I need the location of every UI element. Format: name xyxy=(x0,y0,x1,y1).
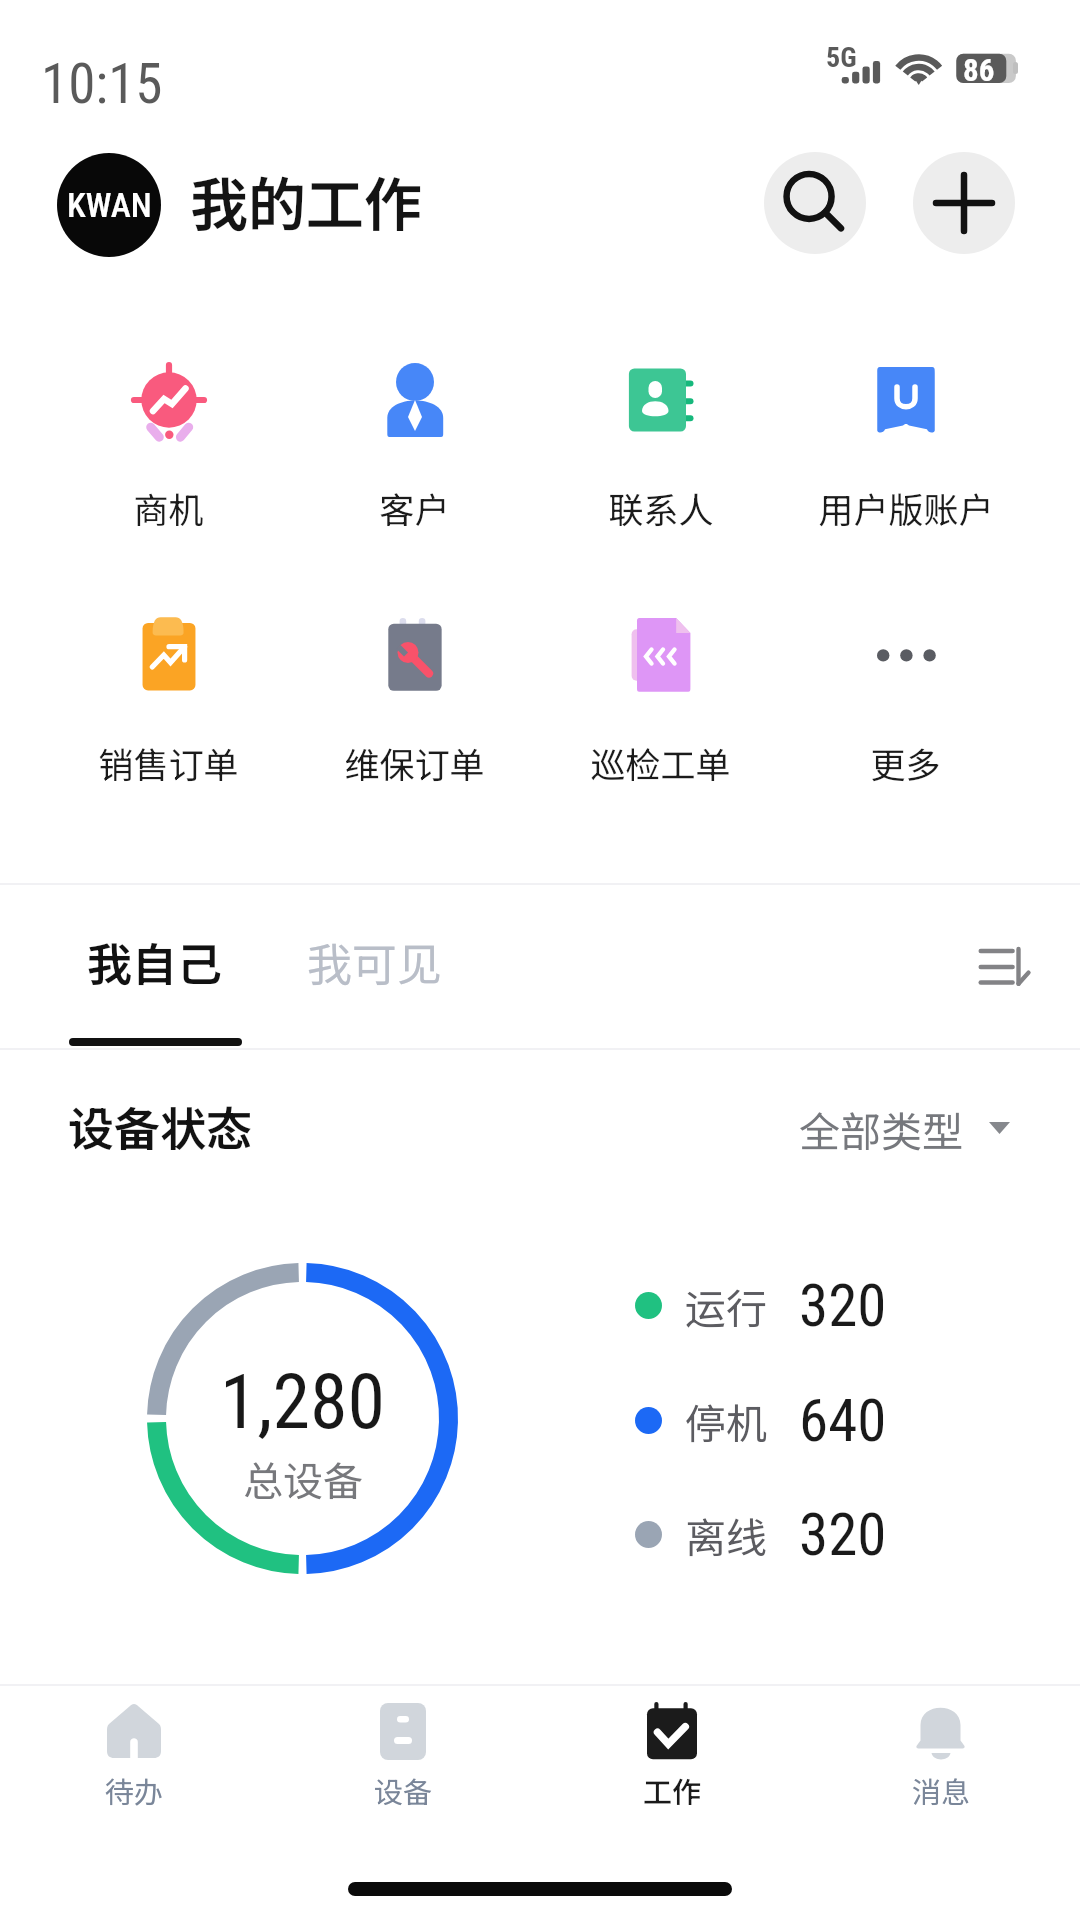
button[interactable]: Logo xyxy=(57,153,161,257)
button[interactable]: 我自己 xyxy=(69,907,241,1016)
staticText: 更多 xyxy=(870,737,941,788)
button[interactable]: Add xyxy=(913,152,1015,254)
staticText: 商机 xyxy=(133,482,204,533)
staticText: 10:15 xyxy=(41,52,163,116)
button[interactable]: 商机 xyxy=(47,336,290,526)
staticText: 86 xyxy=(963,52,995,88)
staticText: 640 xyxy=(799,1386,887,1455)
button[interactable]: 待办 xyxy=(0,1686,268,1816)
staticText: 1,280 xyxy=(220,1357,386,1446)
staticText: 维保订单 xyxy=(344,737,485,788)
staticText: 总设备 xyxy=(243,1450,363,1508)
button[interactable]: 停机 xyxy=(620,1374,907,1466)
button[interactable]: Search xyxy=(764,152,866,254)
button[interactable]: 维保订单 xyxy=(293,590,536,780)
button[interactable]: 运行 xyxy=(620,1259,907,1351)
staticText: 我自己 xyxy=(87,929,223,994)
staticText: 停机 xyxy=(685,1391,767,1450)
staticText: 运行 xyxy=(685,1276,767,1335)
staticText: 用户版账户 xyxy=(818,482,994,533)
button[interactable]: 销售订单 xyxy=(47,590,290,780)
button[interactable]: 巡检工单 xyxy=(539,590,782,780)
button[interactable]: 离线 xyxy=(620,1488,907,1580)
staticText: 离线 xyxy=(685,1505,767,1564)
button[interactable]: 联系人 xyxy=(539,336,782,526)
staticText: 联系人 xyxy=(608,482,714,533)
staticText: 全部类型 xyxy=(799,1099,963,1158)
staticText: 5G xyxy=(826,41,857,74)
staticText: 销售订单 xyxy=(98,737,239,788)
staticText: 我可见 xyxy=(307,929,443,994)
staticText: 320 xyxy=(799,1271,887,1340)
staticText: 巡检工单 xyxy=(590,737,731,788)
button[interactable]: 工作 xyxy=(538,1686,806,1816)
staticText: 320 xyxy=(799,1500,887,1569)
button[interactable]: 用户版账户 xyxy=(784,336,1027,526)
staticText: KWAN xyxy=(67,185,152,225)
button[interactable]: 更多 xyxy=(784,590,1027,780)
button[interactable]: 设备 xyxy=(269,1686,537,1816)
staticText: 设备 xyxy=(374,1769,433,1811)
button[interactable]: Sort xyxy=(958,917,1054,1013)
staticText: 工作 xyxy=(643,1769,702,1811)
button[interactable]: 全部类型 xyxy=(779,1090,1030,1166)
button[interactable]: 客户 xyxy=(293,336,536,526)
button[interactable]: 消息 xyxy=(807,1686,1075,1816)
staticText: 客户 xyxy=(379,482,450,533)
staticText: 设备状态 xyxy=(68,1093,252,1160)
staticText: 消息 xyxy=(912,1769,971,1811)
staticText: 我的工作 xyxy=(190,159,423,243)
button[interactable]: 我可见 xyxy=(289,907,461,1016)
staticText: 待办 xyxy=(105,1769,164,1811)
